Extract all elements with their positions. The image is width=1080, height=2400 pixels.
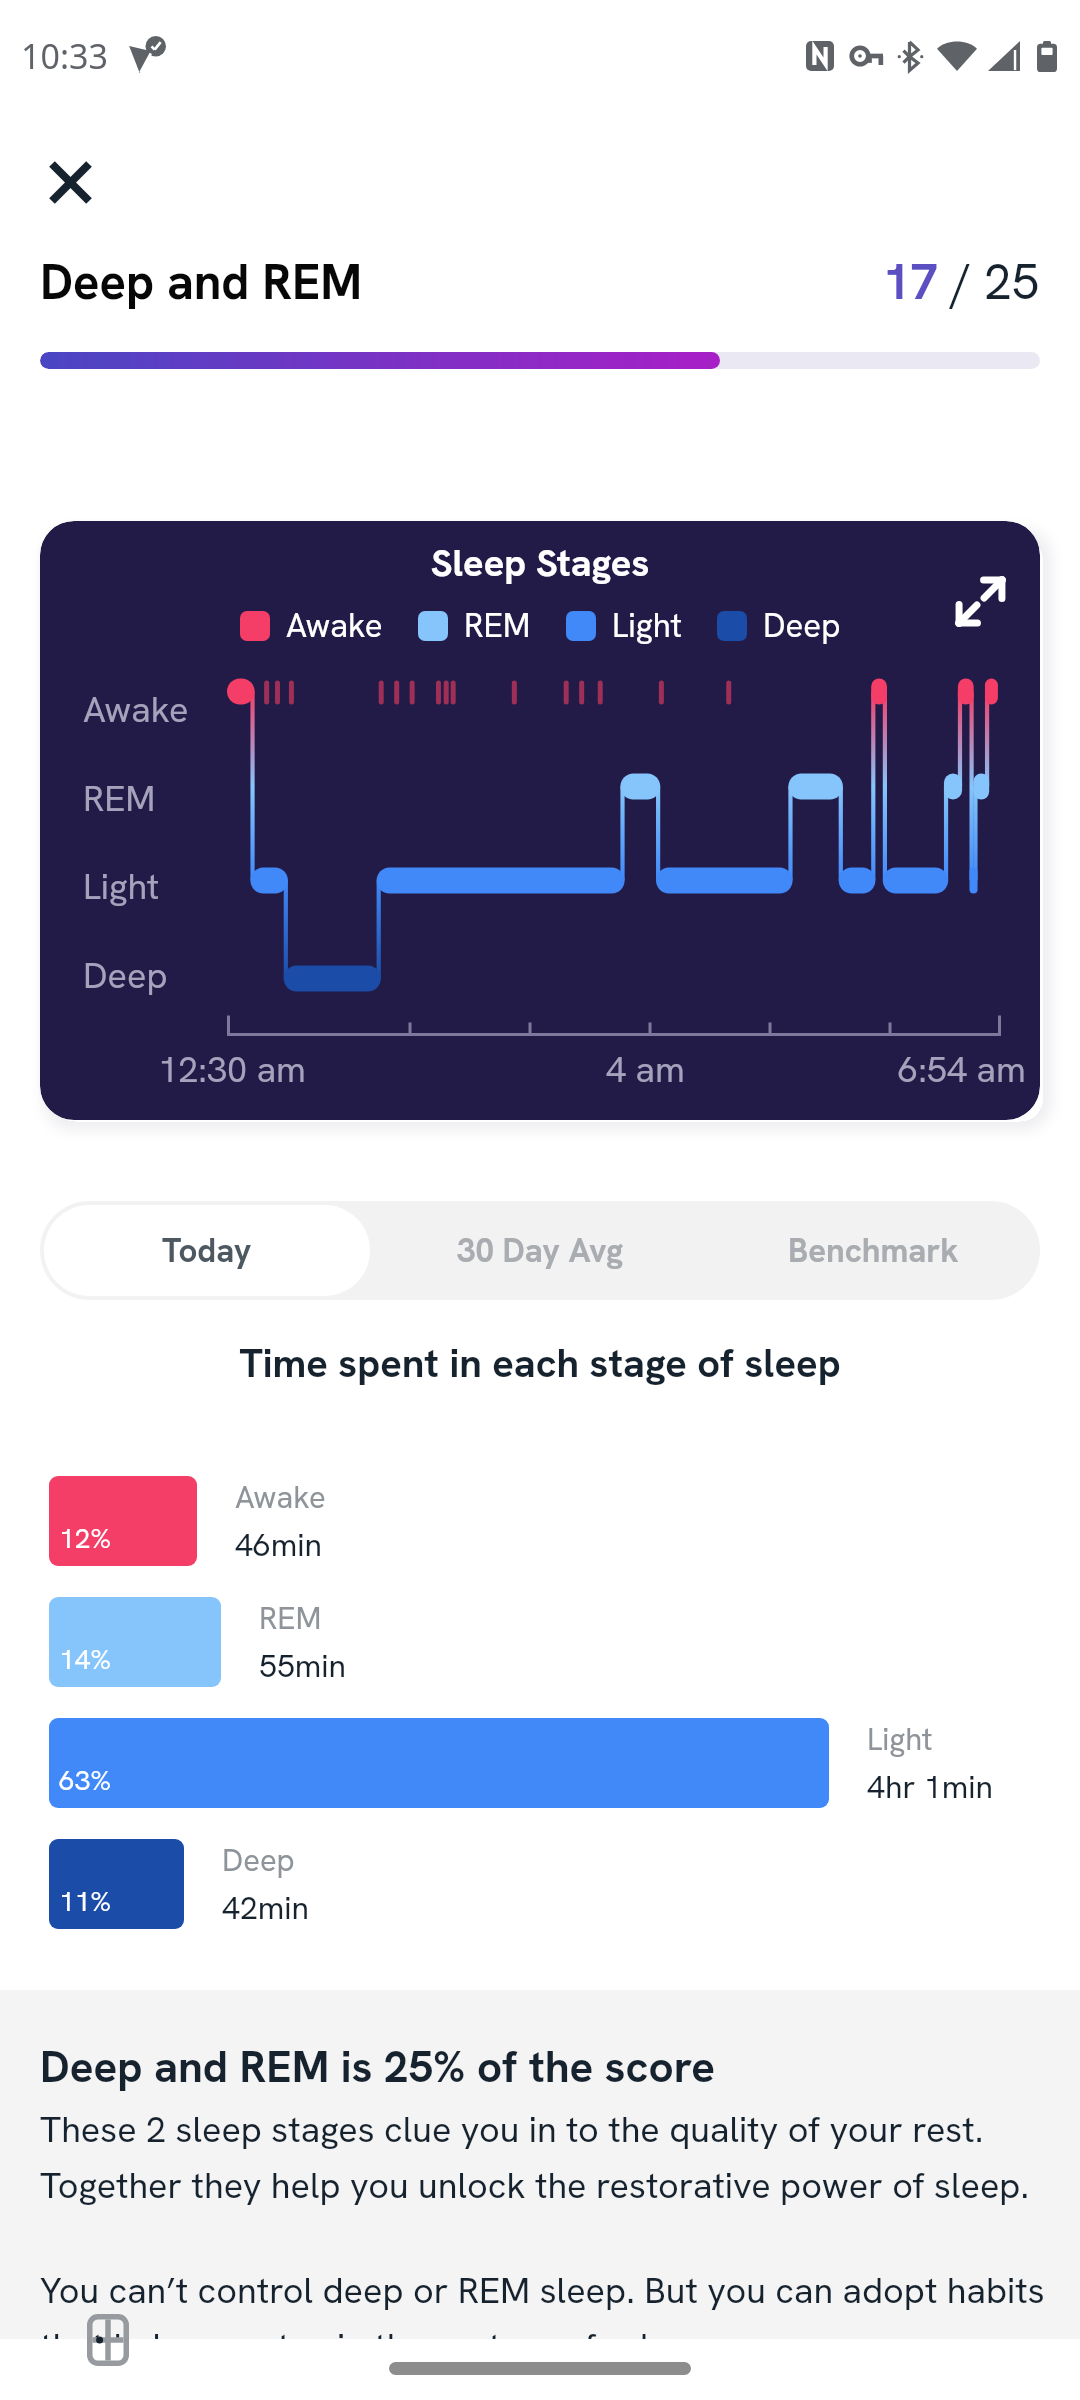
- staticText: Deep: [222, 1840, 295, 1880]
- staticText: Light: [867, 1719, 933, 1759]
- staticText: / 25: [951, 250, 1040, 314]
- staticText: 55min: [259, 1645, 347, 1687]
- staticText: 12:30 am: [158, 1046, 306, 1093]
- staticText: REM: [83, 775, 156, 822]
- staticText: REM: [259, 1598, 322, 1638]
- staticText: Light: [612, 604, 682, 647]
- staticText: Sleep Stages: [40, 538, 1040, 588]
- staticText: Awake: [83, 686, 189, 733]
- staticText: You can’t control deep or REM sleep. But…: [40, 2267, 1058, 2339]
- staticText: Time spent in each stage of sleep: [0, 1337, 1080, 1389]
- button[interactable]: Expand chart: [940, 561, 1020, 641]
- staticText: 46min: [235, 1524, 323, 1566]
- staticText: Awake: [235, 1477, 326, 1517]
- staticText: 4 am: [606, 1046, 685, 1093]
- button[interactable]: Split screen: [87, 2314, 129, 2366]
- staticText: 10:33: [21, 33, 108, 79]
- staticText: Deep and REM is 25% of the score: [40, 2038, 716, 2095]
- staticText: Light: [83, 863, 160, 910]
- button[interactable]: Benchmark: [707, 1201, 1040, 1300]
- staticText: 42min: [222, 1887, 310, 1929]
- staticText: Benchmark: [788, 1229, 959, 1272]
- staticText: Deep and REM: [40, 250, 363, 314]
- staticText: 17: [883, 250, 938, 314]
- staticText: 30 Day Avg: [457, 1229, 624, 1272]
- staticText: Deep: [83, 952, 168, 999]
- button[interactable]: Today: [44, 1205, 370, 1296]
- staticText: 6:54 am: [898, 1046, 1026, 1093]
- staticText: 12%: [59, 1520, 112, 1556]
- staticText: Awake: [286, 604, 383, 647]
- staticText: 63%: [59, 1762, 112, 1798]
- button[interactable]: 30 Day Avg: [374, 1201, 707, 1300]
- staticText: 11%: [59, 1883, 112, 1919]
- staticText: REM: [464, 604, 531, 647]
- staticText: Today: [162, 1229, 252, 1272]
- button[interactable]: Close: [20, 132, 120, 232]
- staticText: Deep: [763, 604, 841, 647]
- staticText: 4hr 1min: [867, 1766, 993, 1808]
- staticText: These 2 sleep stages clue you in to the …: [40, 2106, 1058, 2209]
- staticText: 14%: [59, 1641, 112, 1677]
